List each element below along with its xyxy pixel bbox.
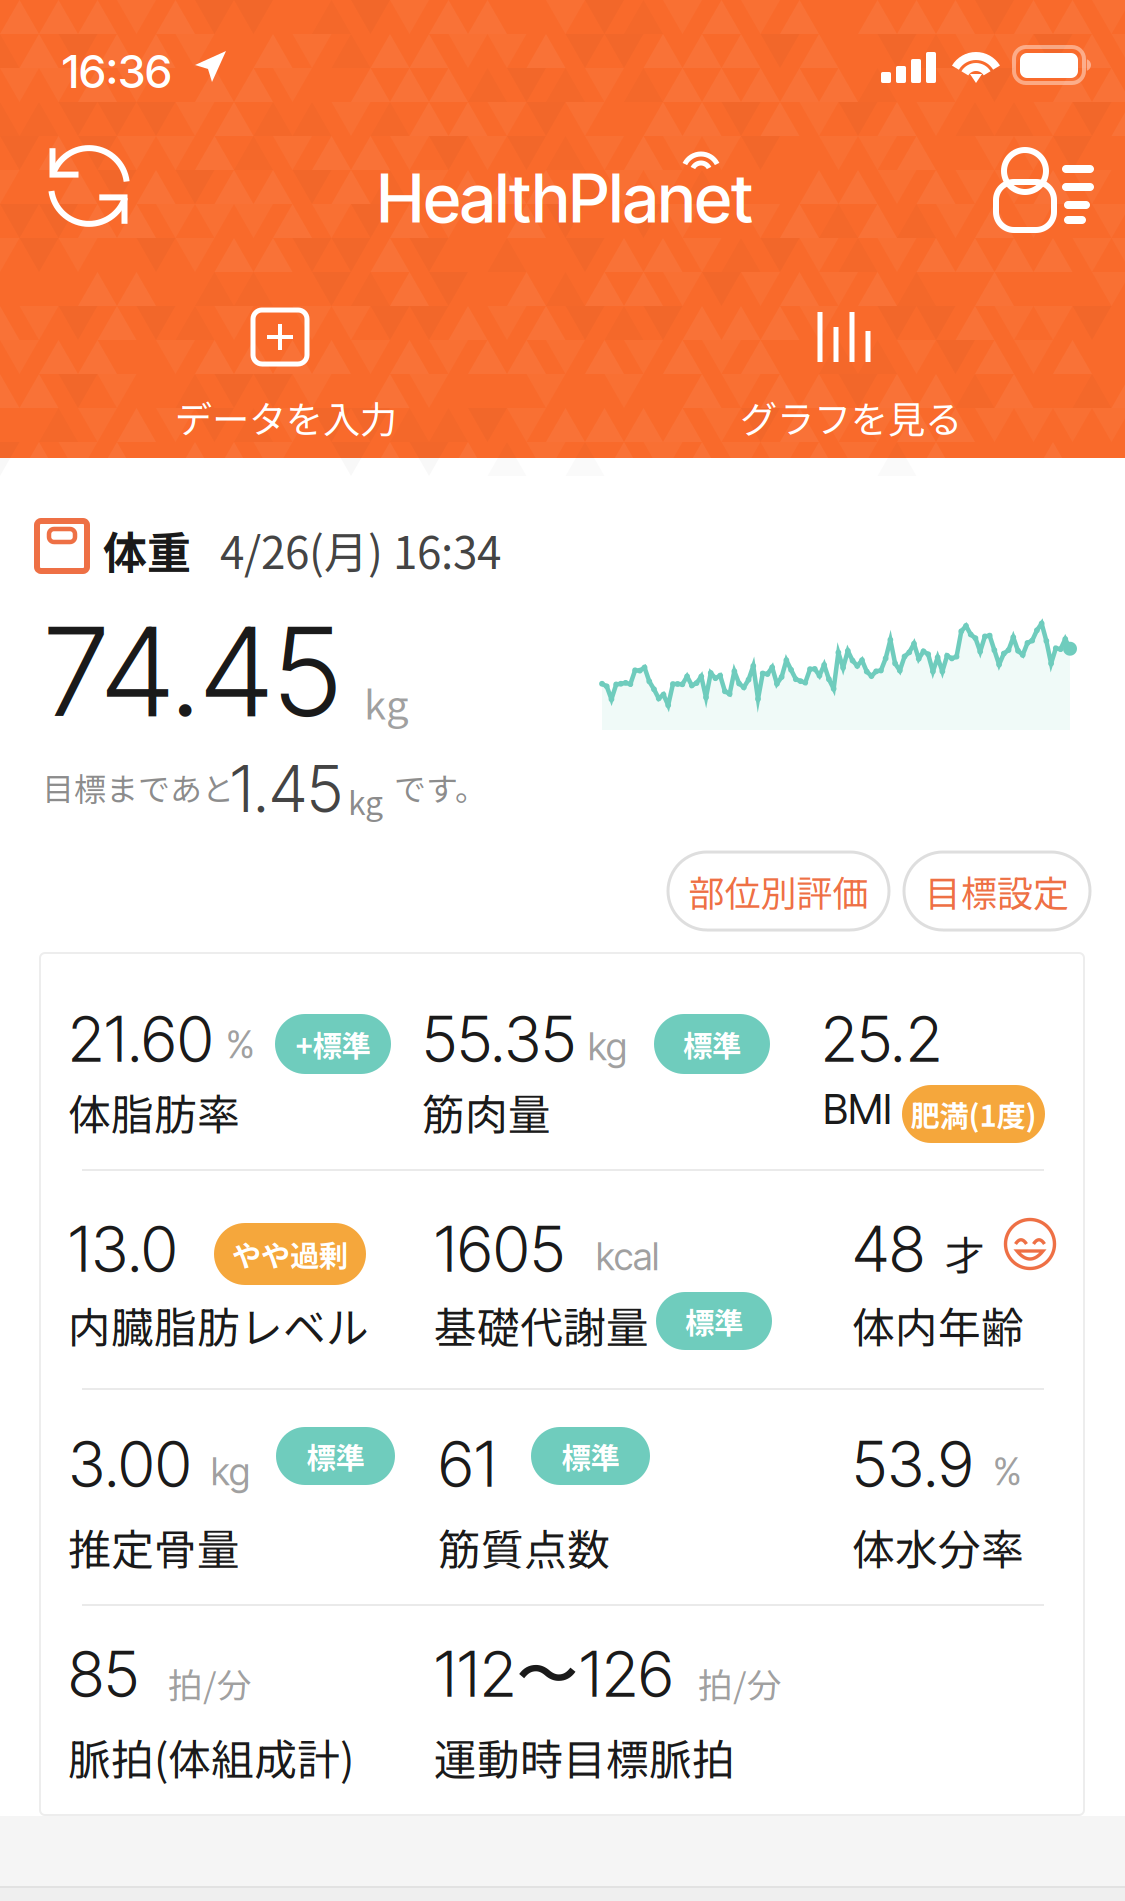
- staticText: 内臓脂肪レベル: [68, 1294, 369, 1356]
- staticText: 肥満(1度): [910, 1093, 1036, 1135]
- staticText: 標準: [561, 1435, 619, 1477]
- staticText: 才: [945, 1224, 985, 1282]
- staticText: 部位別評価: [688, 865, 868, 917]
- staticText: 体重: [103, 518, 191, 582]
- button[interactable]: Profile: [972, 122, 1106, 254]
- staticText: 筋肉量: [422, 1081, 551, 1143]
- staticText: 13.0: [68, 1211, 178, 1287]
- staticText: 脈拍(体組成計): [68, 1726, 354, 1788]
- staticText: kg: [348, 778, 383, 824]
- staticText: +標準: [295, 1023, 370, 1065]
- staticText: 4/26(月) 16:34: [220, 518, 501, 582]
- staticText: BMI: [823, 1084, 892, 1134]
- staticText: 48: [852, 1211, 925, 1287]
- staticText: 74.45: [44, 597, 341, 745]
- staticText: です。: [394, 764, 487, 810]
- button[interactable]: データを入力: [65, 302, 495, 452]
- staticText: やや過剰: [232, 1233, 348, 1275]
- staticText: %: [993, 1449, 1022, 1494]
- staticText: 推定骨量: [68, 1516, 240, 1578]
- staticText: 目標設定: [925, 865, 1069, 917]
- staticText: 55.35: [422, 1001, 576, 1077]
- staticText: 体脂肪率: [68, 1081, 240, 1143]
- staticText: 体内年齢: [852, 1294, 1024, 1356]
- staticText: データを入力: [175, 390, 397, 444]
- staticText: 基礎代謝量: [434, 1294, 649, 1356]
- staticText: 112〜126: [434, 1636, 674, 1715]
- staticText: 1605: [434, 1211, 565, 1287]
- staticText: 体水分率: [852, 1516, 1024, 1578]
- staticText: kg: [588, 1024, 627, 1069]
- staticText: kcal: [596, 1234, 659, 1279]
- staticText: グラフを見る: [740, 390, 962, 444]
- staticText: 筋質点数: [438, 1516, 610, 1578]
- button[interactable]: Sync: [22, 119, 156, 253]
- staticText: 16:36: [62, 44, 172, 99]
- staticText: %: [226, 1022, 255, 1067]
- staticText: 21.60: [68, 1001, 214, 1077]
- staticText: 拍/分: [698, 1658, 782, 1708]
- button[interactable]: グラフを見る: [630, 302, 1060, 452]
- staticText: HealthPlanet: [377, 158, 753, 239]
- staticText: 61: [438, 1426, 497, 1502]
- staticText: kg: [364, 673, 409, 731]
- staticText: 標準: [306, 1435, 364, 1477]
- staticText: 標準: [683, 1023, 741, 1065]
- staticText: 目標まであと: [42, 764, 234, 810]
- staticText: 1.45: [230, 750, 343, 827]
- button[interactable]: 目標設定: [904, 852, 1090, 930]
- staticText: 53.9: [852, 1426, 974, 1502]
- staticText: 標準: [685, 1300, 743, 1342]
- staticText: kg: [211, 1449, 250, 1494]
- staticText: 拍/分: [168, 1658, 252, 1708]
- staticText: 運動時目標脈拍: [434, 1726, 735, 1788]
- staticText: 25.2: [821, 1001, 942, 1077]
- staticText: 3.00: [68, 1426, 192, 1502]
- staticText: 85: [68, 1636, 139, 1712]
- button[interactable]: 部位別評価: [668, 852, 889, 930]
